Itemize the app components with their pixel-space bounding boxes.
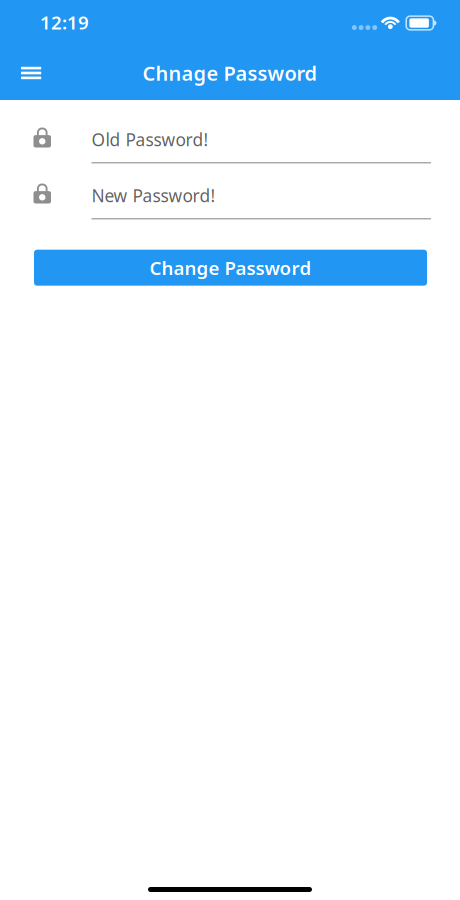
staticText: 12:19 bbox=[40, 10, 89, 35]
button[interactable]: Menu bbox=[10, 53, 52, 93]
staticText: Change Password bbox=[149, 255, 311, 280]
button[interactable]: Change Password bbox=[34, 250, 427, 286]
staticText: Chnage Password bbox=[142, 60, 317, 86]
staticText: New Password! bbox=[91, 184, 215, 207]
staticText: Old Password! bbox=[91, 128, 208, 151]
